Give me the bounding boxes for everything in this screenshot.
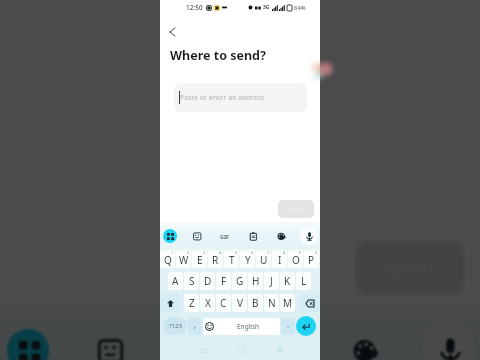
button[interactable]: I xyxy=(272,250,287,268)
staticText: 4 xyxy=(219,250,222,255)
staticText: U xyxy=(260,253,268,267)
button[interactable] xyxy=(300,294,320,312)
staticText: 8 xyxy=(283,250,286,255)
button[interactable]: T xyxy=(224,250,239,268)
staticText: 0 xyxy=(315,250,318,255)
button[interactable]: Clipboard xyxy=(258,329,301,360)
button[interactable]: Enter xyxy=(296,316,316,336)
button[interactable]: Y xyxy=(240,250,255,268)
button[interactable]: Back xyxy=(164,24,180,40)
staticText: 5 xyxy=(235,250,238,255)
button[interactable]: E xyxy=(192,250,207,268)
staticText: N xyxy=(268,296,276,310)
button[interactable]: Clipboard xyxy=(246,229,260,243)
staticText: 12:50 xyxy=(186,3,203,12)
staticText: ?123 xyxy=(169,322,182,330)
staticText: 2 xyxy=(187,250,190,255)
staticText: W xyxy=(179,253,189,267)
staticText: , xyxy=(194,319,197,330)
button[interactable]: W xyxy=(176,250,191,268)
staticText: V xyxy=(237,296,243,310)
staticText: 6 xyxy=(251,250,254,255)
button[interactable]: K xyxy=(280,272,295,290)
staticText: E xyxy=(197,253,203,267)
staticText: Q xyxy=(164,253,172,267)
button[interactable]: Z xyxy=(184,294,199,312)
button[interactable]: Keyboard modes xyxy=(7,329,49,360)
button[interactable]: Stickers xyxy=(89,329,131,360)
staticText: S xyxy=(189,274,195,288)
staticText: B xyxy=(252,296,259,310)
button[interactable]: Emoji xyxy=(203,318,216,335)
button[interactable]: Theme xyxy=(274,229,288,243)
button[interactable]: F xyxy=(216,272,231,290)
button[interactable]: G xyxy=(232,272,247,290)
button[interactable]: Q xyxy=(160,250,175,268)
staticText: Next xyxy=(288,204,305,214)
button[interactable]: A xyxy=(168,272,183,290)
staticText: G xyxy=(236,274,244,288)
staticText: 64% xyxy=(294,4,306,12)
button[interactable]: Next xyxy=(278,200,314,218)
staticText: C xyxy=(220,296,227,310)
button[interactable]: S xyxy=(184,272,199,290)
button[interactable]: M xyxy=(280,294,295,312)
button[interactable]: GIF xyxy=(173,329,216,360)
staticText: I xyxy=(278,253,282,267)
staticText: 3G xyxy=(263,4,270,11)
staticText: O xyxy=(292,253,300,267)
button[interactable] xyxy=(160,294,180,312)
staticText: Z xyxy=(189,296,195,310)
staticText: Paste or enter an address xyxy=(180,93,265,103)
button[interactable]: V xyxy=(232,294,247,312)
button[interactable]: Back xyxy=(274,344,286,356)
button[interactable]: R xyxy=(208,250,223,268)
button[interactable]: Theme xyxy=(343,329,385,360)
button[interactable]: Home xyxy=(235,344,247,356)
staticText: L xyxy=(301,274,307,288)
button[interactable]: U xyxy=(256,250,271,268)
staticText: 1 xyxy=(171,250,174,255)
staticText: K xyxy=(284,274,291,288)
button[interactable]: Period xyxy=(281,318,295,335)
button[interactable]: X xyxy=(200,294,215,312)
button[interactable]: B xyxy=(248,294,263,312)
staticText: GIF xyxy=(179,341,210,360)
button[interactable]: L xyxy=(296,272,311,290)
button[interactable]: H xyxy=(248,272,263,290)
staticText: M xyxy=(283,296,293,310)
button[interactable]: ?123 xyxy=(163,317,187,335)
button[interactable]: D xyxy=(200,272,215,290)
staticText: 7 xyxy=(267,250,270,255)
button[interactable]: Voice input xyxy=(422,323,476,360)
staticText: 3 xyxy=(203,250,206,255)
staticText: J xyxy=(270,274,273,288)
staticText: A xyxy=(172,274,179,288)
button[interactable]: P xyxy=(304,250,319,268)
staticText: Where to send? xyxy=(170,47,266,64)
staticText: H xyxy=(252,274,260,288)
staticText: D xyxy=(204,274,212,288)
staticText: Y xyxy=(245,253,251,267)
staticText: . xyxy=(287,319,290,330)
button[interactable]: English xyxy=(216,318,280,335)
staticText: 9 xyxy=(299,250,302,255)
button[interactable]: Keyboard modes xyxy=(163,229,177,243)
button[interactable]: Comma xyxy=(188,318,202,335)
staticText: P xyxy=(308,253,315,267)
button[interactable]: Voice input xyxy=(300,227,318,245)
button[interactable]: Recents xyxy=(197,344,209,356)
staticText: R xyxy=(212,253,219,267)
staticText: English xyxy=(237,322,260,331)
button[interactable]: O xyxy=(288,250,303,268)
button[interactable]: Paste or enter an address xyxy=(174,83,307,112)
button[interactable]: GIF xyxy=(218,229,232,243)
button[interactable]: J xyxy=(264,272,279,290)
button[interactable]: Stickers xyxy=(190,229,204,243)
button[interactable]: C xyxy=(216,294,231,312)
button[interactable]: N xyxy=(264,294,279,312)
staticText: X xyxy=(205,296,211,310)
staticText: T xyxy=(229,253,235,267)
